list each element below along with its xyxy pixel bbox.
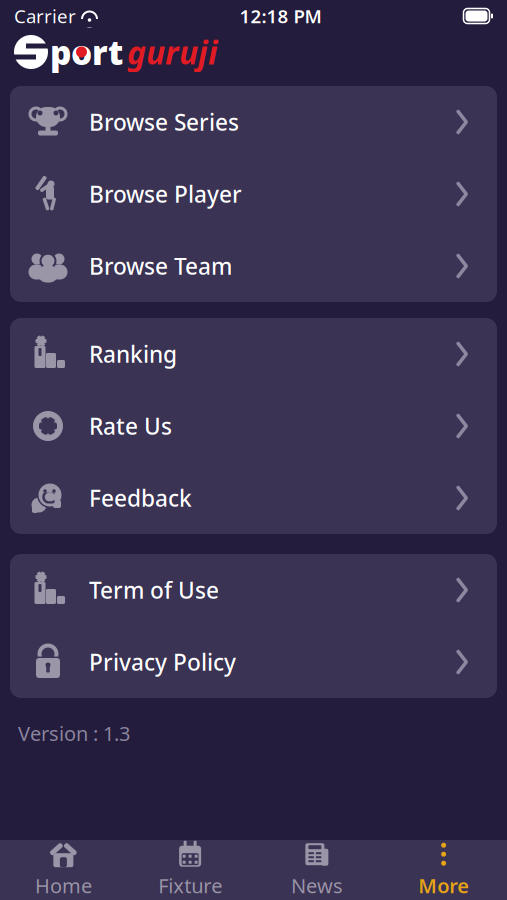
button[interactable]: Feedback (10, 462, 497, 534)
staticText: Home (35, 872, 92, 899)
staticText: Rate Us (89, 411, 172, 441)
staticText: guruji (127, 31, 218, 73)
button[interactable]: News (253, 840, 380, 900)
button[interactable]: Ranking (10, 318, 497, 390)
button[interactable]: Browse Player (10, 158, 497, 230)
staticText: p (50, 30, 71, 74)
button[interactable]: Browse Series (10, 86, 497, 158)
button[interactable]: Term of Use (10, 554, 497, 626)
staticText: Version : 1.3 (18, 720, 130, 747)
staticText: Browse Player (89, 179, 242, 209)
button[interactable]: More (380, 840, 507, 900)
staticText: Browse Team (89, 251, 232, 281)
staticText: Fixture (158, 872, 222, 899)
staticText: Browse Series (89, 107, 239, 137)
staticText: Feedback (89, 483, 192, 513)
button[interactable]: Fixture (127, 840, 254, 900)
button[interactable]: Rate Us (10, 390, 497, 462)
button[interactable]: Privacy Policy (10, 626, 497, 698)
button[interactable]: Home (0, 840, 127, 900)
staticText: News (291, 872, 343, 899)
staticText: Ranking (89, 339, 177, 369)
button[interactable]: Browse Team (10, 230, 497, 302)
staticText: Privacy Policy (89, 647, 236, 677)
staticText: rt (92, 30, 123, 74)
staticText: 12:18 PM (239, 4, 321, 28)
staticText: Term of Use (89, 575, 219, 605)
staticText: More (418, 872, 469, 899)
staticText: Carrier (14, 4, 76, 28)
staticText: o (71, 30, 92, 74)
